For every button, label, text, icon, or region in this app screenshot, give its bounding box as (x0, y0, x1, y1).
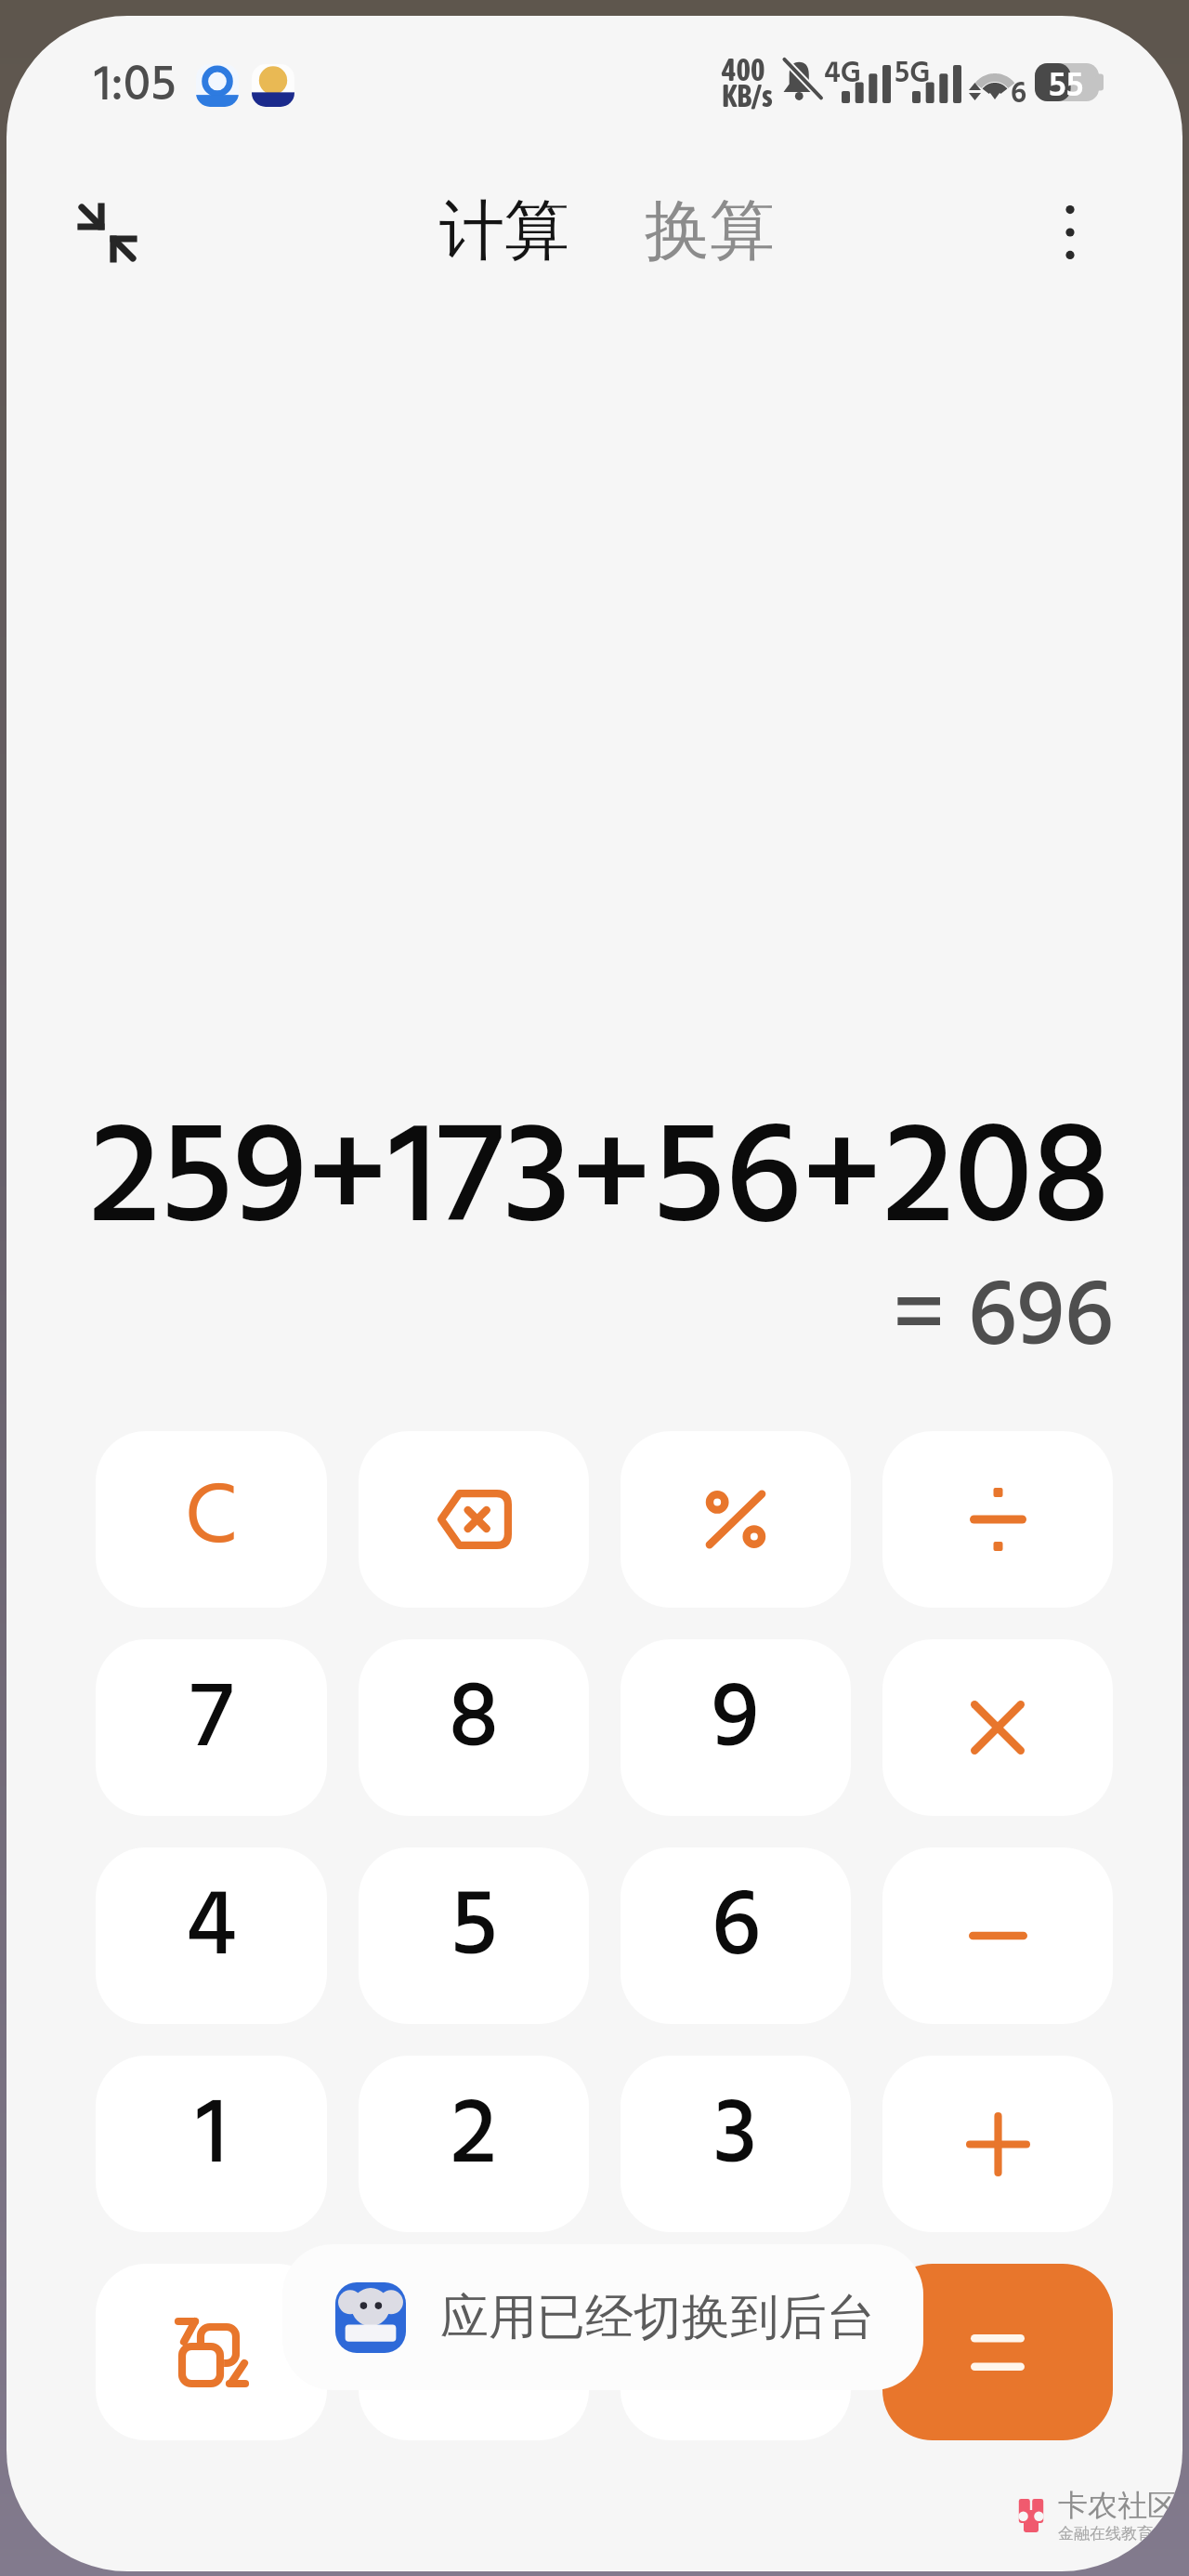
staticText: 259+173+56+208 (88, 1079, 1110, 1278)
staticText: 应用已经切换到后台 (440, 2287, 875, 2348)
button[interactable]: 4 (96, 1847, 327, 2024)
button[interactable]: 0 (359, 2264, 589, 2440)
staticText: 9 (712, 1654, 760, 1782)
staticText: 2 (451, 2070, 497, 2199)
staticText: 0 (449, 2279, 500, 2407)
staticText: 卡农社区 (1058, 2487, 1177, 2524)
button[interactable]: 计算 (426, 176, 582, 287)
staticText: 400 (722, 52, 765, 87)
button[interactable]: eq (882, 2264, 1113, 2440)
staticText: 5 (451, 1862, 498, 1991)
button[interactable]: Collapse (56, 181, 158, 283)
staticText: 金融在线教育 (1058, 2524, 1153, 2543)
button[interactable]: sub (882, 1847, 1113, 2024)
staticText: KB/s (722, 78, 773, 113)
button[interactable]: More options (1019, 181, 1121, 283)
button[interactable]: 2 (359, 2056, 589, 2232)
staticText: 3 (713, 2070, 758, 2199)
button[interactable]: 9 (621, 1639, 851, 1816)
button[interactable]: 3 (621, 2056, 851, 2232)
button[interactable]: mul (882, 1639, 1113, 1816)
button[interactable]: 8 (359, 1639, 589, 1816)
staticText: . (726, 2279, 745, 2407)
button[interactable]: 7 (96, 1639, 327, 1816)
button[interactable]: C (96, 1431, 327, 1608)
staticText: 1:05 (94, 50, 176, 120)
button[interactable]: div (882, 1431, 1113, 1608)
staticText: 6 (712, 1862, 761, 1991)
staticText: 4 (186, 1862, 237, 1991)
button[interactable]: 换算 (632, 176, 788, 287)
staticText: 4G (824, 53, 861, 94)
button[interactable]: 5 (359, 1847, 589, 2024)
staticText: 7 (190, 1654, 233, 1782)
button[interactable]: add (882, 2056, 1113, 2232)
staticText: 8 (449, 1654, 499, 1782)
button[interactable] (621, 1431, 851, 1608)
button[interactable]: . (621, 2264, 851, 2440)
staticText: = 696 (893, 1253, 1114, 1381)
button[interactable]: del (359, 1431, 589, 1608)
staticText: 1 (196, 2070, 228, 2199)
staticText: 换算 (645, 191, 775, 272)
staticText: 计算 (439, 191, 569, 272)
button[interactable]: 1 (96, 2056, 327, 2232)
staticText: 5G (895, 53, 931, 94)
staticText: C (185, 1456, 238, 1577)
staticText: 55 (1049, 62, 1084, 100)
button[interactable]: conv (96, 2264, 327, 2440)
button[interactable]: 6 (621, 1847, 851, 2024)
staticText: 6 (1011, 73, 1027, 114)
